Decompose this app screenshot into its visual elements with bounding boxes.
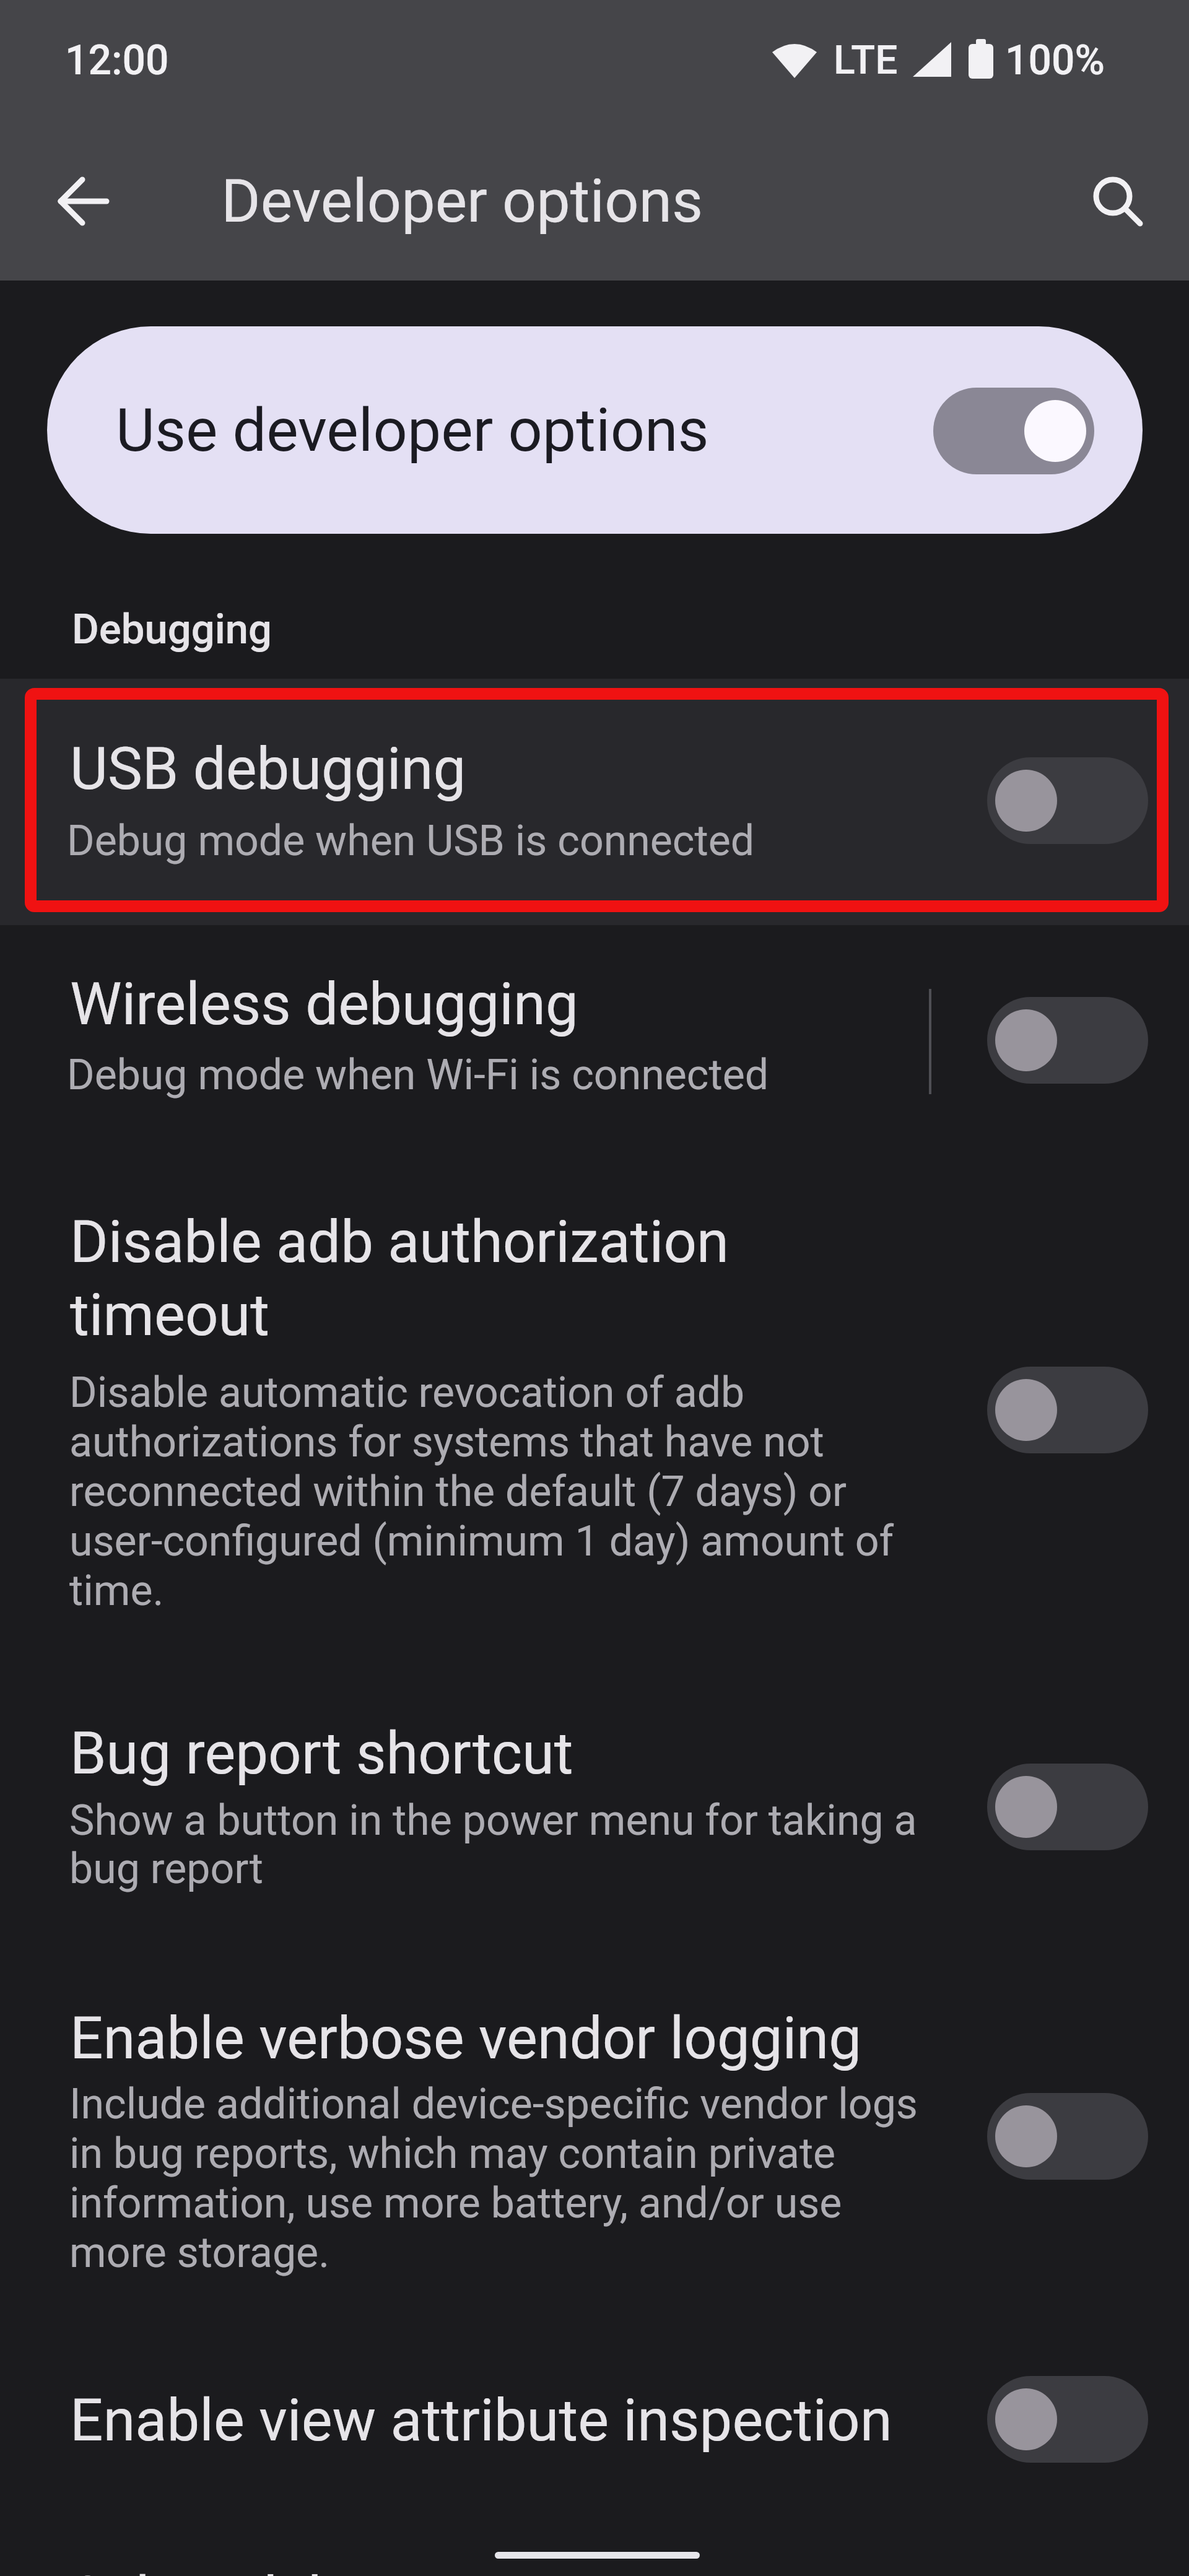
staticText: Enable view attribute inspection xyxy=(70,2387,892,2455)
staticText: USB debugging xyxy=(70,735,466,803)
staticText: Developer options xyxy=(221,166,703,237)
staticText: Select debug app xyxy=(70,2564,517,2576)
staticText: Disable adb authorization xyxy=(70,1208,729,1276)
staticText: Use developer options xyxy=(116,395,709,466)
staticText: Include additional device-specific vendo… xyxy=(69,2079,918,2278)
button[interactable] xyxy=(987,757,1148,844)
staticText: 100% xyxy=(1005,37,1105,84)
button[interactable] xyxy=(0,1195,1189,1629)
staticText: Disable automatic revocation of adb auth… xyxy=(69,1368,894,1616)
button[interactable] xyxy=(987,997,1148,1084)
button[interactable] xyxy=(987,1367,1148,1453)
button[interactable] xyxy=(987,2376,1148,2463)
staticText: Wireless debugging xyxy=(70,970,578,1038)
staticText: LTE xyxy=(834,37,898,84)
button[interactable] xyxy=(0,679,1189,925)
button[interactable] xyxy=(0,2000,1189,2297)
button[interactable] xyxy=(47,326,1143,534)
button[interactable] xyxy=(1087,170,1149,232)
staticText: Debug mode when Wi-Fi is connected xyxy=(67,1050,769,1100)
staticText: Enable verbose vendor logging xyxy=(70,2004,862,2073)
button[interactable] xyxy=(0,954,1189,1127)
button[interactable] xyxy=(987,2093,1148,2180)
button[interactable] xyxy=(50,167,118,235)
staticText: Debug mode when USB is connected xyxy=(67,816,755,866)
button[interactable] xyxy=(933,388,1094,474)
staticText: timeout xyxy=(70,1281,270,1349)
staticText: Bug report shortcut xyxy=(70,1720,573,1788)
staticText: Show a button in the power menu for taki… xyxy=(69,1796,917,1893)
button[interactable] xyxy=(987,1764,1148,1850)
staticText: 12:00 xyxy=(65,37,169,84)
button[interactable] xyxy=(0,1709,1189,1913)
staticText: Debugging xyxy=(72,605,272,654)
button[interactable] xyxy=(0,2353,1189,2489)
